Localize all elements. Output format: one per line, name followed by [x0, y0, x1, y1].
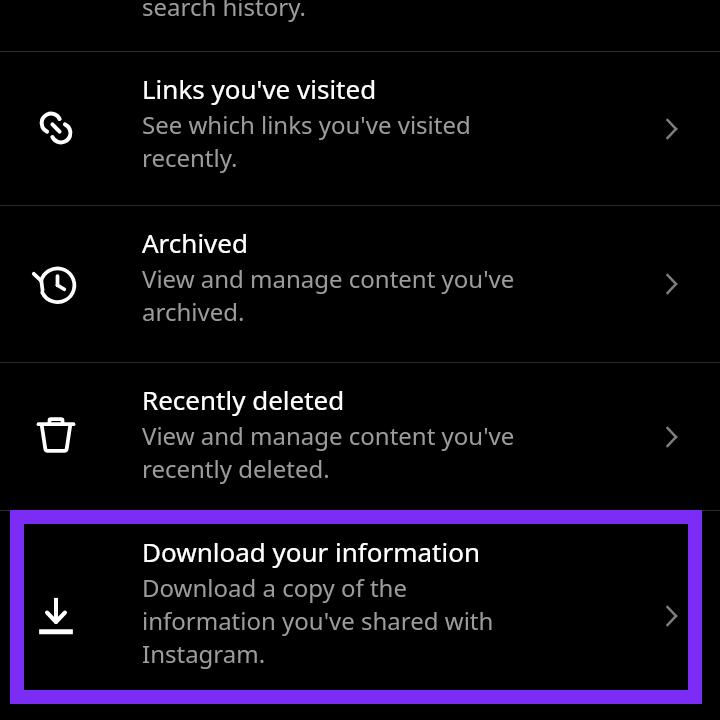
button[interactable]: Links you've visited [0, 52, 720, 205]
staticText: search history. [142, 0, 306, 23]
button[interactable]: Archived [0, 206, 720, 362]
other: Open Archived [656, 269, 686, 299]
staticText: View and manage content you've archived. [142, 262, 515, 328]
staticText: See which links you've visited recently. [142, 108, 471, 174]
other: Open Links you've visited [656, 114, 686, 144]
button[interactable]: Download your information [0, 511, 720, 720]
other: Open Download your information [656, 601, 686, 631]
other: Open Recently deleted [656, 422, 686, 452]
button[interactable]: Recently deleted [0, 363, 720, 510]
other: Links you've visited [31, 103, 81, 153]
button[interactable]: search history. [0, 0, 720, 51]
staticText: Links you've visited [142, 74, 377, 106]
staticText: Download a copy of the information you'v… [142, 571, 494, 670]
other: Archived [31, 259, 81, 309]
staticText: Download your information [142, 537, 481, 569]
staticText: Archived [142, 228, 248, 260]
staticText: View and manage content you've recently … [142, 419, 515, 485]
staticText: Recently deleted [142, 385, 345, 417]
other: Recently deleted [31, 411, 81, 461]
other: Download your information [31, 591, 81, 641]
